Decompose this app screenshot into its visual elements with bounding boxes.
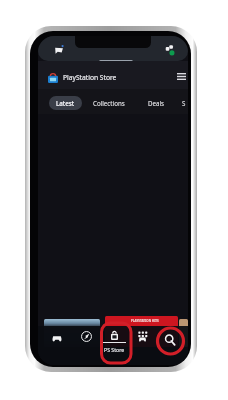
staticText: Latest — [56, 99, 75, 107]
staticText: Collections — [93, 99, 125, 107]
button[interactable]: Menu — [174, 69, 188, 83]
button[interactable]: Explore — [75, 329, 98, 351]
button[interactable]: Collections — [91, 96, 127, 110]
button[interactable]: Search — [159, 329, 182, 351]
staticText: S — [182, 99, 186, 107]
staticText: PLAYSTATION HITS — [131, 319, 159, 323]
button[interactable]: Games — [45, 329, 68, 351]
button[interactable]: Latest — [49, 96, 82, 110]
staticText: PlayStation Store — [63, 73, 117, 82]
button[interactable]: PS Store — [101, 329, 128, 353]
staticText: PS Store — [104, 346, 125, 353]
button[interactable]: Library — [131, 329, 154, 351]
staticText: Deals — [148, 99, 165, 107]
button[interactable]: PlayStation Store — [48, 73, 58, 83]
button[interactable]: Deals — [146, 96, 167, 110]
button[interactable]: S — [180, 96, 188, 110]
